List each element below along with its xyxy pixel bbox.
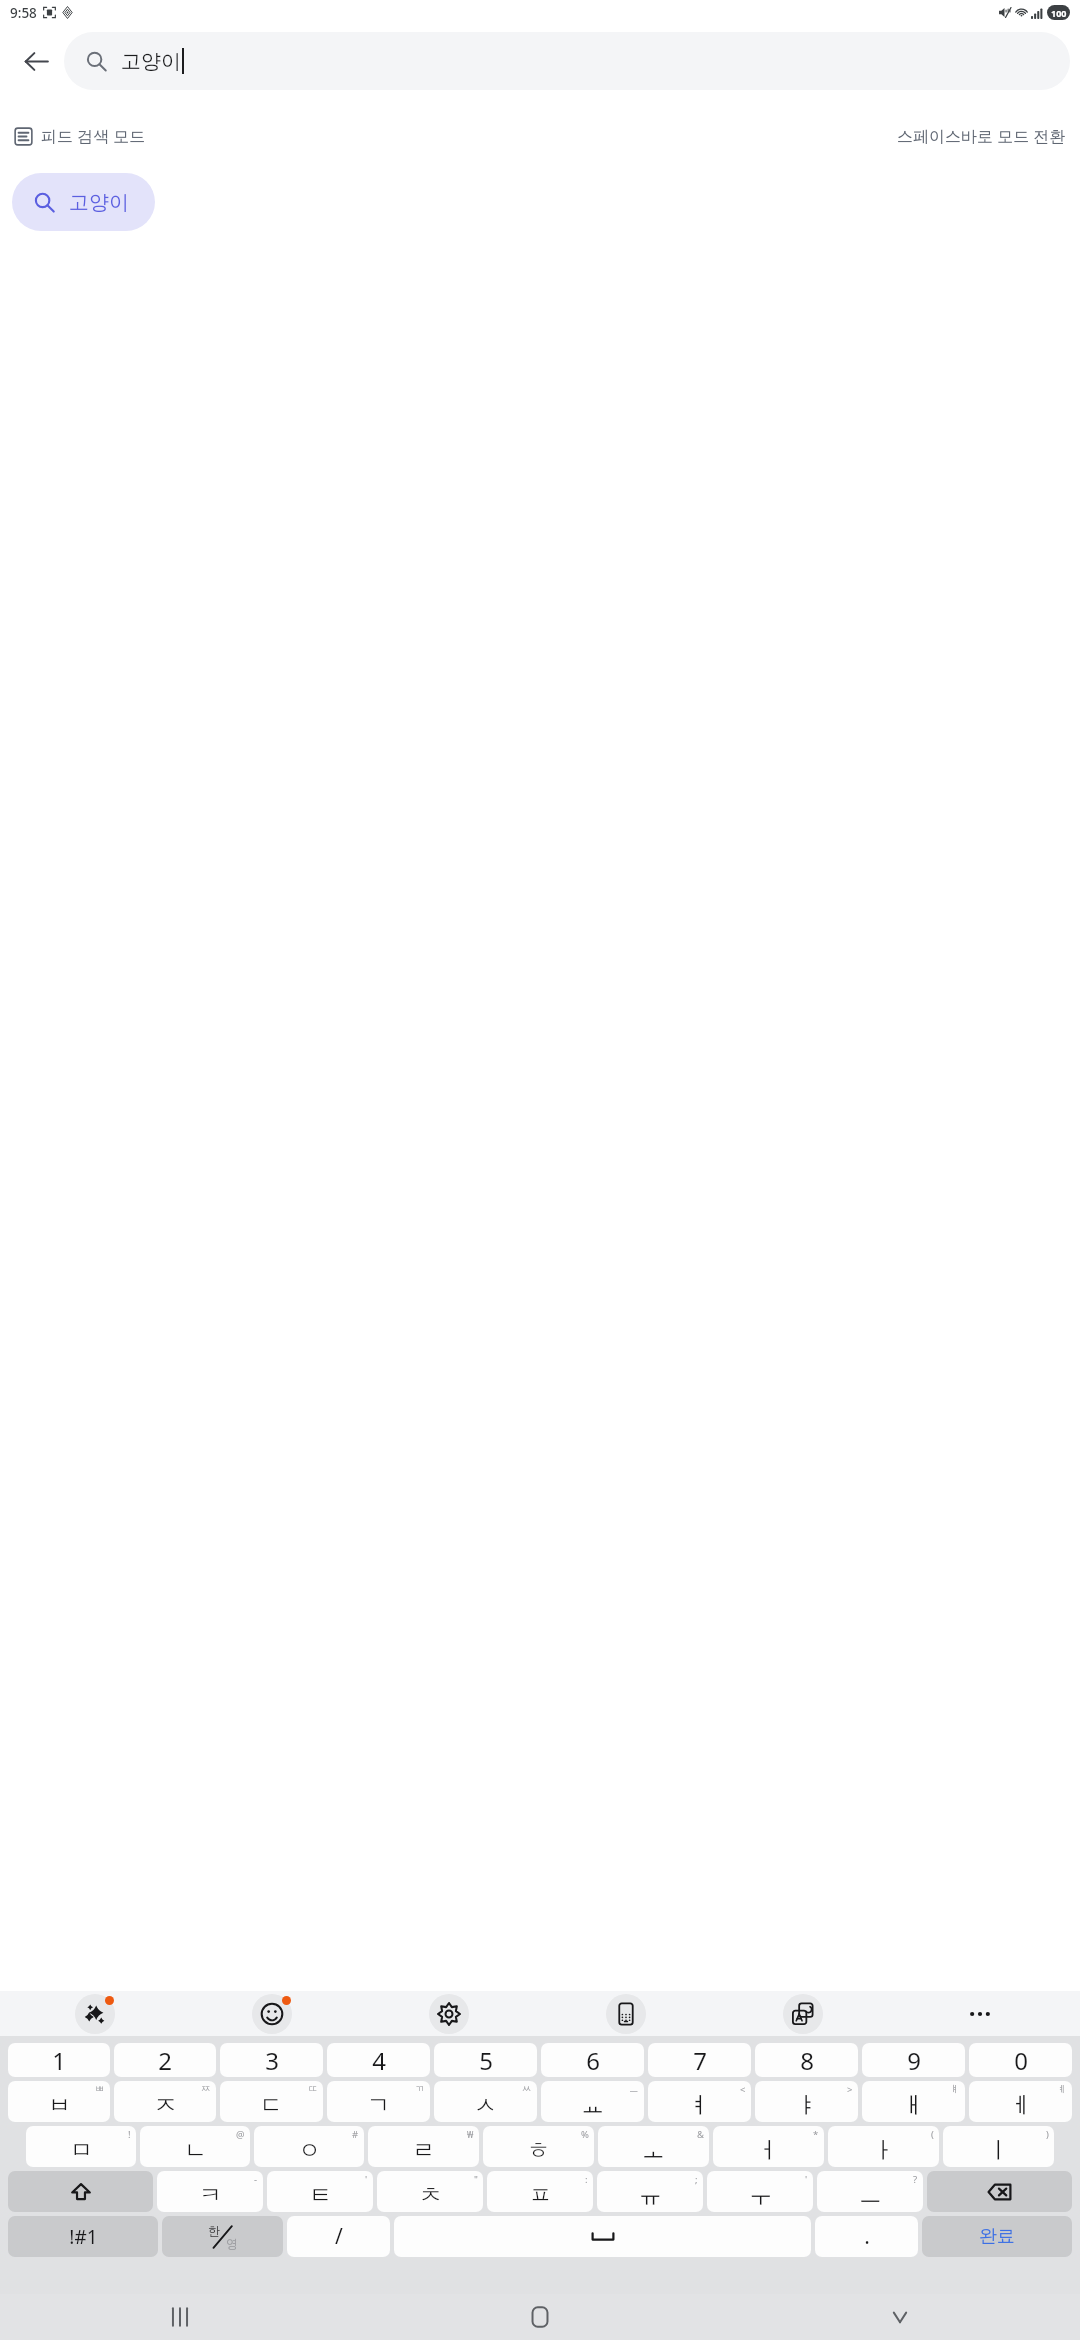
button[interactable]: AI suggestions: [6, 1991, 183, 2036]
button[interactable]: >: [755, 2081, 858, 2122]
button[interactable]: Backspace: [927, 2171, 1072, 2212]
staticText: (: [931, 2128, 934, 2141]
button[interactable]: 5: [434, 2043, 537, 2077]
button[interactable]: ?: [817, 2171, 923, 2212]
staticText: ㅌ: [309, 2181, 332, 2210]
button[interactable]: ㅖ: [969, 2081, 1072, 2122]
staticText: ?: [913, 2173, 918, 2186]
staticText: -: [254, 2173, 258, 2186]
button[interactable]: 9: [862, 2043, 965, 2077]
button[interactable]: ㅡ: [541, 2081, 644, 2122]
button[interactable]: :: [487, 2171, 593, 2212]
button[interactable]: ₩: [368, 2126, 479, 2167]
button[interactable]: 고양이: [12, 173, 155, 231]
staticText: ㅁ: [70, 2136, 93, 2165]
button[interactable]: ;: [597, 2171, 703, 2212]
staticText: 0: [1014, 2044, 1028, 2077]
staticText: ": [474, 2173, 478, 2186]
staticText: ㅕ: [688, 2091, 711, 2120]
button[interactable]: Space: [394, 2216, 811, 2257]
button[interactable]: !: [26, 2126, 136, 2167]
button[interactable]: ㅃ: [8, 2081, 110, 2122]
staticText: 3: [265, 2044, 279, 2077]
button[interactable]: Shift: [8, 2171, 153, 2212]
button[interactable]: One-handed keyboard: [537, 1991, 714, 2036]
button[interactable]: ': [707, 2171, 813, 2212]
staticText: ㅗ: [642, 2136, 665, 2165]
staticText: :: [585, 2173, 588, 2186]
staticText: ': [365, 2173, 368, 2186]
button[interactable]: 6: [541, 2043, 644, 2077]
button[interactable]: #: [254, 2126, 364, 2167]
button[interactable]: 고양이: [64, 32, 1070, 90]
staticText: ₩: [467, 2128, 474, 2141]
staticText: <: [740, 2083, 746, 2096]
button[interactable]: 4: [327, 2043, 430, 2077]
staticText: &: [697, 2128, 704, 2141]
button[interactable]: <: [648, 2081, 751, 2122]
button[interactable]: Home: [360, 2294, 720, 2340]
button[interactable]: &: [598, 2126, 709, 2167]
button[interactable]: Recents: [0, 2294, 360, 2340]
staticText: >: [847, 2083, 853, 2096]
button[interactable]: 1: [8, 2043, 110, 2077]
staticText: ㅛ: [581, 2091, 604, 2120]
button[interactable]: %: [483, 2126, 594, 2167]
button[interactable]: ": [377, 2171, 483, 2212]
staticText: !: [128, 2128, 131, 2141]
staticText: ㅎ: [527, 2136, 550, 2165]
staticText: 9: [907, 2044, 921, 2077]
button[interactable]: ㅒ: [862, 2081, 965, 2122]
staticText: ㅣ: [987, 2136, 1010, 2165]
button[interactable]: @: [140, 2126, 250, 2167]
button[interactable]: ): [943, 2126, 1054, 2167]
button[interactable]: Settings: [360, 1991, 537, 2036]
staticText: 7: [693, 2044, 707, 2077]
button[interactable]: !#1: [8, 2216, 158, 2257]
button[interactable]: 7: [648, 2043, 751, 2077]
staticText: ㄸ: [308, 2083, 318, 2095]
button[interactable]: 피드 검색 모드: [12, 125, 148, 147]
button[interactable]: 3: [220, 2043, 323, 2077]
staticText: 영: [226, 2236, 238, 2251]
button[interactable]: *: [713, 2126, 824, 2167]
button[interactable]: ㅉ: [114, 2081, 216, 2122]
staticText: #: [352, 2128, 359, 2141]
button[interactable]: 0: [969, 2043, 1072, 2077]
staticText: ㅡ: [629, 2083, 639, 2095]
button[interactable]: Korean English toggle: [162, 2216, 283, 2257]
button[interactable]: More options: [891, 1991, 1068, 2036]
staticText: %: [581, 2128, 589, 2141]
staticText: 6: [586, 2044, 600, 2077]
button[interactable]: 스페이스바로 모드 전환: [895, 125, 1068, 147]
staticText: ㄷ: [260, 2091, 283, 2120]
staticText: ㅉ: [201, 2083, 211, 2095]
button[interactable]: -: [157, 2171, 263, 2212]
staticText: 완료: [979, 2225, 1015, 2248]
button[interactable]: ㄲ: [327, 2081, 430, 2122]
button[interactable]: Translate: [714, 1991, 891, 2036]
button[interactable]: ㄸ: [220, 2081, 323, 2122]
button[interactable]: 8: [755, 2043, 858, 2077]
staticText: ㅃ: [95, 2083, 105, 2095]
staticText: ;: [695, 2173, 698, 2186]
button[interactable]: 2: [114, 2043, 216, 2077]
staticText: 1: [52, 2044, 66, 2077]
button[interactable]: ㅆ: [434, 2081, 537, 2122]
staticText: ㄹ: [412, 2136, 435, 2165]
button[interactable]: (: [828, 2126, 939, 2167]
button[interactable]: 완료: [922, 2216, 1072, 2257]
button[interactable]: Back: [10, 35, 62, 87]
staticText: ㅐ: [902, 2091, 925, 2120]
button[interactable]: .: [815, 2216, 918, 2257]
staticText: ㅖ: [1057, 2083, 1067, 2095]
staticText: ㄲ: [415, 2083, 425, 2095]
button[interactable]: ': [267, 2171, 373, 2212]
staticText: ㅊ: [419, 2181, 442, 2210]
staticText: ㅅ: [474, 2091, 497, 2120]
button[interactable]: Hide keyboard: [720, 2294, 1080, 2340]
button[interactable]: Emoji: [183, 1991, 360, 2036]
staticText: ㅓ: [757, 2136, 780, 2165]
staticText: 한: [208, 2223, 220, 2238]
button[interactable]: /: [287, 2216, 390, 2257]
